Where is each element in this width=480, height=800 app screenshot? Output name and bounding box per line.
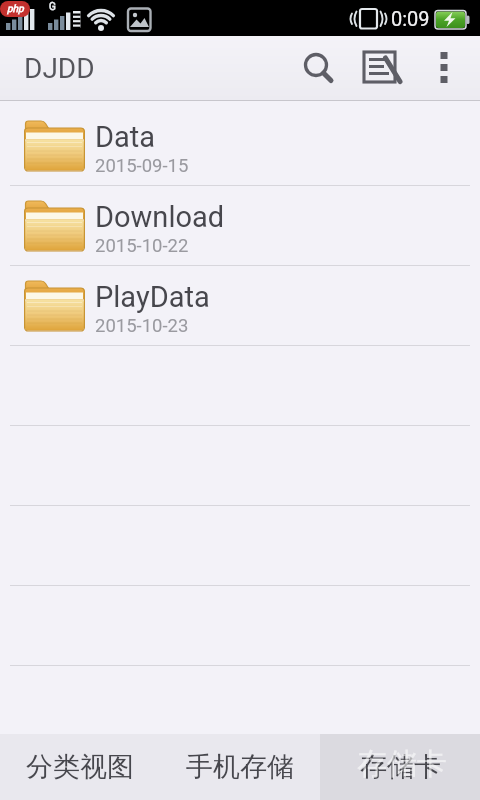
staticText: DJDD <box>24 52 95 85</box>
staticText: 手机存储 <box>186 750 294 784</box>
staticText: Download <box>95 200 225 234</box>
button[interactable]: 存储卡 <box>320 734 480 800</box>
button[interactable] <box>291 36 344 100</box>
staticText: Data <box>95 120 156 154</box>
button[interactable]: 手机存储 <box>160 734 320 800</box>
staticText: php <box>7 3 24 15</box>
staticText: 0:09 <box>391 7 430 30</box>
staticText: G <box>49 1 56 13</box>
button[interactable]: PlayData <box>0 266 480 345</box>
staticText: 分类视图 <box>26 750 134 784</box>
button[interactable] <box>417 36 470 100</box>
staticText: 2015-10-22 <box>95 235 189 257</box>
staticText: 2015-09-15 <box>95 155 189 177</box>
staticText: 存储卡 <box>360 750 441 784</box>
button[interactable]: 分类视图 <box>0 734 160 800</box>
staticText: 存储卡 <box>357 745 447 783</box>
staticText: PlayData <box>95 280 210 314</box>
button[interactable]: Data <box>0 106 480 185</box>
button[interactable] <box>349 36 413 100</box>
button[interactable]: Download <box>0 186 480 265</box>
staticText: 2015-10-23 <box>95 315 189 337</box>
